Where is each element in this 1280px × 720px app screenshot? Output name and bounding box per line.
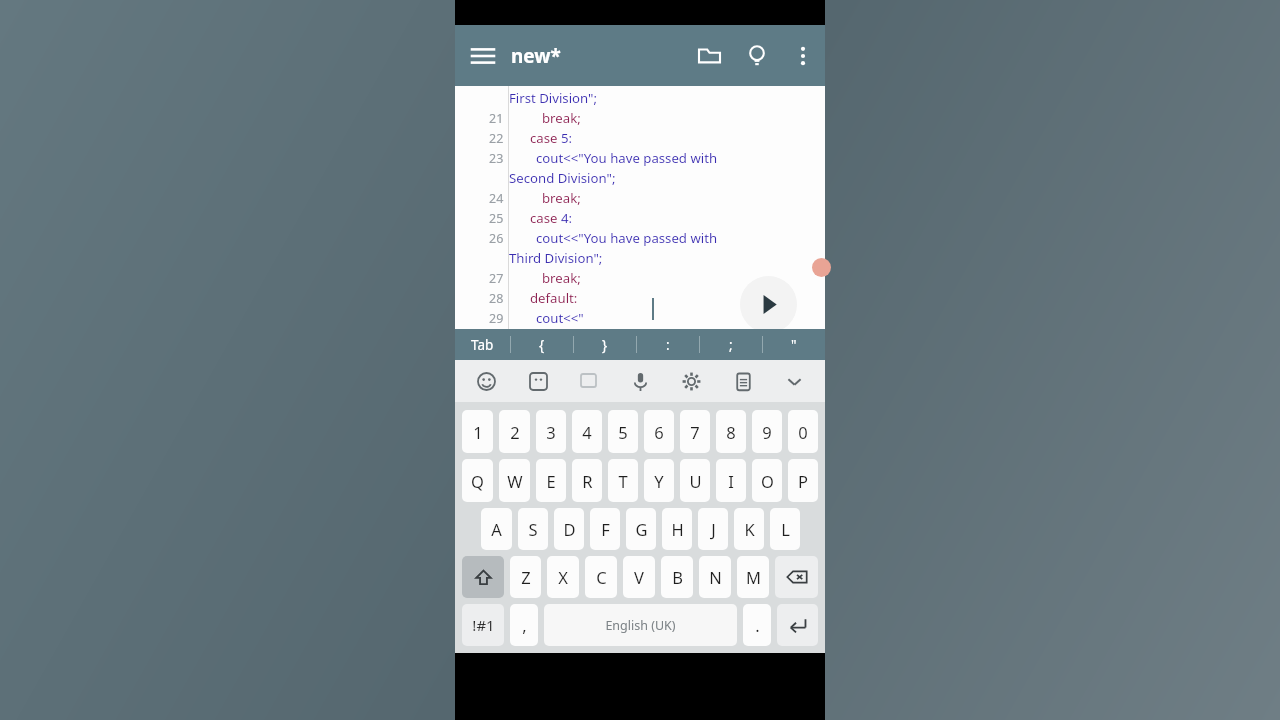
staticText: cout<<"You have passed with <box>536 229 718 247</box>
button[interactable]: P <box>788 459 818 502</box>
button[interactable]: English (UK) <box>544 604 737 646</box>
button[interactable]: 4 <box>572 410 602 453</box>
staticText: 8 <box>726 421 736 443</box>
button[interactable]: Hide keyboard <box>774 361 814 401</box>
staticText: English (UK) <box>605 617 676 634</box>
button[interactable]: A <box>481 508 512 550</box>
button[interactable]: Emoji <box>466 361 506 401</box>
button[interactable]: Stickers <box>518 361 558 401</box>
button[interactable]: Backspace <box>775 556 818 598</box>
button[interactable]: 9 <box>752 410 782 453</box>
staticText: 25 <box>489 210 504 227</box>
staticText: N <box>709 566 722 588</box>
staticText: 7 <box>690 421 700 443</box>
staticText: { <box>539 336 545 354</box>
button[interactable]: Y <box>644 459 674 502</box>
button[interactable]: F <box>590 508 620 550</box>
staticText: !#1 <box>472 615 495 635</box>
staticText: Third Division"; <box>509 249 603 267</box>
button[interactable]: N <box>699 556 731 598</box>
staticText: cout<<"You have passed with <box>536 149 718 167</box>
staticText: O <box>761 470 774 492</box>
staticText: Second Division"; <box>509 169 616 187</box>
button[interactable]: B <box>661 556 693 598</box>
button[interactable]: Tab <box>455 329 510 360</box>
button[interactable]: S <box>518 508 548 550</box>
button[interactable]: U <box>680 459 710 502</box>
staticText: , <box>522 614 527 636</box>
button[interactable]: 8 <box>716 410 746 453</box>
button[interactable]: 3 <box>536 410 566 453</box>
staticText: M <box>746 566 761 588</box>
button[interactable]: I <box>716 459 746 502</box>
button[interactable]: 6 <box>644 410 674 453</box>
button[interactable]: Q <box>462 459 493 502</box>
button[interactable]: O <box>752 459 782 502</box>
staticText: L <box>781 518 790 540</box>
button[interactable]: W <box>499 459 530 502</box>
staticText: T <box>618 470 628 492</box>
staticText: Z <box>521 566 531 588</box>
staticText: Y <box>654 470 664 492</box>
button[interactable]: , <box>510 604 538 646</box>
button[interactable]: GIF <box>569 361 609 401</box>
staticText: C <box>596 566 607 588</box>
button[interactable]: 5 <box>608 410 638 453</box>
staticText: 29 <box>489 310 504 327</box>
button[interactable]: X <box>547 556 579 598</box>
button[interactable]: Run <box>740 276 797 333</box>
button[interactable]: E <box>536 459 566 502</box>
button[interactable]: M <box>737 556 769 598</box>
button[interactable]: 2 <box>499 410 530 453</box>
button[interactable]: { <box>511 329 573 360</box>
staticText: K <box>744 518 755 540</box>
button[interactable]: Hints <box>733 25 781 86</box>
button[interactable]: Open folder <box>685 25 733 86</box>
staticText: F <box>601 518 610 540</box>
staticText: case 4: <box>530 209 572 227</box>
button[interactable]: K <box>734 508 764 550</box>
staticText: V <box>634 566 644 588</box>
button[interactable]: Settings <box>671 361 711 401</box>
staticText: 21 <box>489 110 504 127</box>
button[interactable]: T <box>608 459 638 502</box>
button[interactable]: " <box>763 329 825 360</box>
button[interactable]: 7 <box>680 410 710 453</box>
button[interactable]: } <box>574 329 636 360</box>
staticText: 5 <box>618 421 628 443</box>
staticText: " <box>791 336 797 354</box>
button[interactable]: H <box>662 508 692 550</box>
button[interactable]: Clipboard <box>723 361 763 401</box>
staticText: A <box>491 518 502 540</box>
button[interactable]: More options <box>781 25 825 86</box>
staticText: E <box>546 470 556 492</box>
button[interactable]: Shift <box>462 556 504 598</box>
staticText: break; <box>542 269 581 287</box>
staticText: I <box>728 470 734 492</box>
button[interactable]: D <box>554 508 584 550</box>
button[interactable]: L <box>770 508 800 550</box>
button[interactable]: 0 <box>788 410 818 453</box>
staticText: D <box>563 518 576 540</box>
staticText: 23 <box>489 150 504 167</box>
button[interactable]: G <box>626 508 656 550</box>
staticText: 28 <box>489 290 504 307</box>
button[interactable]: R <box>572 459 602 502</box>
button[interactable]: V <box>623 556 655 598</box>
button[interactable]: Voice input <box>620 361 660 401</box>
staticText: 27 <box>489 270 504 287</box>
button[interactable]: 1 <box>462 410 493 453</box>
button[interactable]: : <box>637 329 699 360</box>
button[interactable]: !#1 <box>462 604 504 646</box>
button[interactable]: . <box>743 604 771 646</box>
button[interactable]: C <box>585 556 617 598</box>
staticText: ; <box>729 336 733 354</box>
staticText: 0 <box>798 421 808 443</box>
button[interactable]: Z <box>510 556 541 598</box>
button[interactable]: Enter <box>777 604 818 646</box>
button[interactable]: Menu <box>455 25 511 86</box>
staticText: J <box>711 518 716 540</box>
button[interactable]: J <box>698 508 728 550</box>
button[interactable]: ; <box>700 329 762 360</box>
staticText: } <box>602 336 608 354</box>
